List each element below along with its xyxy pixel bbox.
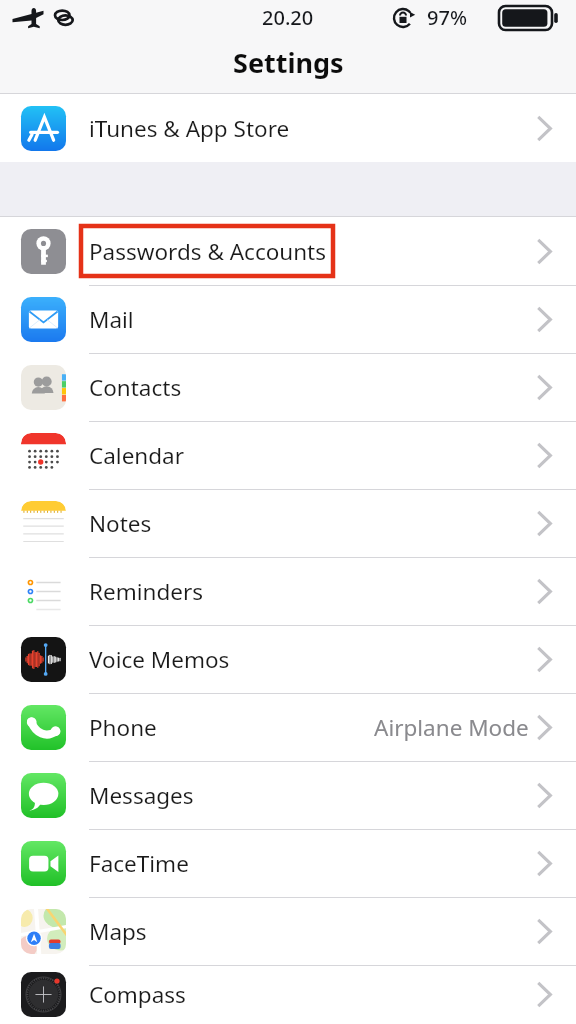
staticText: Maps [89,916,147,947]
button[interactable]: Reminders [0,557,576,625]
other: Open Reminders [536,578,552,605]
other: Open iTunes & App Store [536,115,552,142]
button[interactable]: Contacts [0,353,576,421]
staticText: Mail [89,304,134,335]
staticText: Phone [89,712,157,743]
button[interactable]: Compass [0,965,576,1024]
other: Open Compass [536,981,552,1008]
other: Open Maps [536,918,552,945]
other: Open Calendar [536,442,552,469]
other: Open FaceTime [536,850,552,877]
staticText: Settings [233,44,344,81]
button[interactable]: Passwords & Accounts [0,217,576,285]
staticText: 97% [427,4,467,31]
staticText: Voice Memos [89,644,230,675]
other: Open Contacts [536,374,552,401]
other: Open Voice Memos [536,646,552,673]
other: Open Messages [536,782,552,809]
other: Open Passwords & Accounts [536,238,552,265]
staticText: Notes [89,508,152,539]
button[interactable]: iTunes & App Store [0,94,576,162]
staticText: Contacts [89,372,182,403]
button[interactable]: Messages [0,761,576,829]
staticText: Passwords & Accounts [89,236,327,267]
button[interactable]: Mail [0,285,576,353]
staticText: iTunes & App Store [89,113,290,144]
staticText: Compass [89,979,186,1010]
staticText: 20.20 [262,4,314,31]
button[interactable]: Maps [0,897,576,965]
button[interactable]: Voice Memos [0,625,576,693]
staticText: Airplane Mode [374,712,529,743]
button[interactable]: Calendar [0,421,576,489]
staticText: Reminders [89,576,204,607]
button[interactable]: FaceTime [0,829,576,897]
staticText: FaceTime [89,848,189,879]
other: Open Mail [536,306,552,333]
staticText: Messages [89,780,194,811]
other: Open Notes [536,510,552,537]
staticText: Calendar [89,440,184,471]
other: Open Phone [536,714,552,741]
button[interactable]: Phone [0,693,576,761]
button[interactable]: Notes [0,489,576,557]
